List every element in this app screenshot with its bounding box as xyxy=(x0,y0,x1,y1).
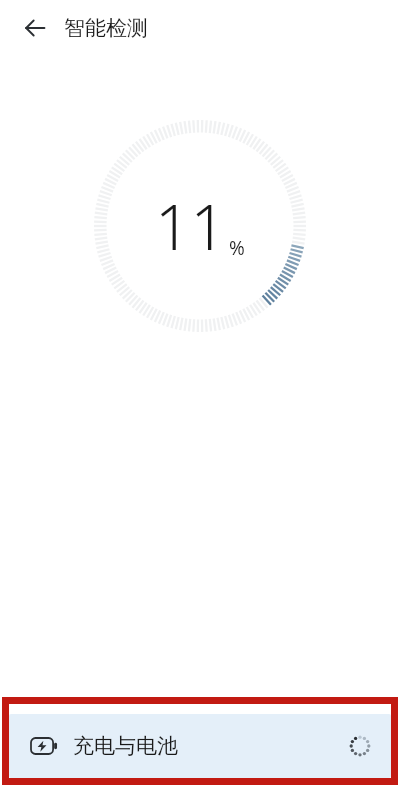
button[interactable]: 充电与电池 xyxy=(9,714,391,778)
button[interactable]: Back xyxy=(18,11,52,45)
staticText: 充电与电池 xyxy=(73,733,178,759)
staticText: 11 xyxy=(155,184,226,268)
staticText: 智能检测 xyxy=(64,15,148,41)
staticText: % xyxy=(229,235,245,261)
